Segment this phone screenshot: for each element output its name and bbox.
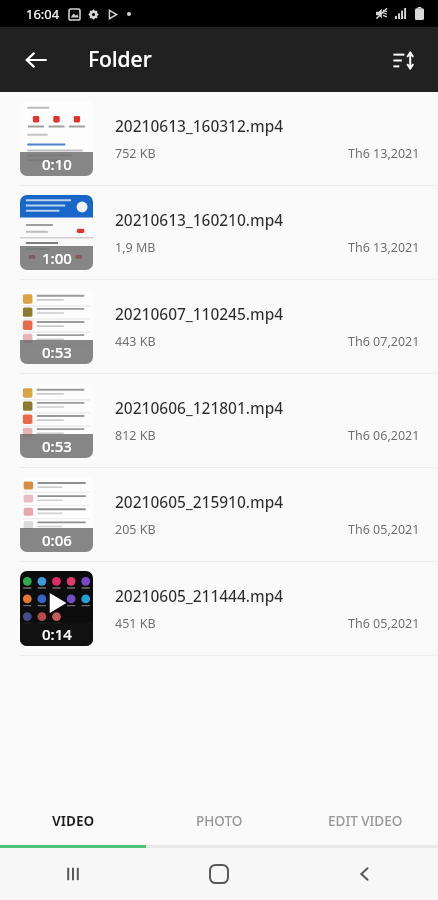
button[interactable]: Recent apps (0, 848, 146, 900)
staticText: 0:06 (42, 530, 72, 550)
staticText: PHOTO (196, 812, 243, 830)
staticText: Th6 06,2021 (348, 427, 420, 444)
staticText: 0:14 (42, 624, 72, 644)
button[interactable]: 0:53 (0, 374, 438, 467)
staticText: 16:04 (26, 5, 60, 23)
staticText: 0:10 (42, 154, 72, 174)
staticText: 1:00 (42, 248, 72, 268)
staticText: 752 KB (115, 145, 156, 162)
staticText: Th6 07,2021 (348, 333, 420, 350)
button[interactable]: Back (292, 848, 438, 900)
staticText: 0:53 (42, 342, 72, 362)
staticText: 1,9 MB (115, 239, 156, 256)
button[interactable]: EDIT VIDEO (292, 797, 438, 845)
staticText: 20210613_160210.mp4 (115, 209, 284, 230)
staticText: EDIT VIDEO (328, 812, 403, 830)
staticText: 20210606_121801.mp4 (115, 397, 284, 418)
button[interactable]: PHOTO (146, 797, 292, 845)
staticText: 443 KB (115, 333, 156, 350)
button[interactable]: 0:06 (0, 468, 438, 561)
staticText: 205 KB (115, 521, 156, 538)
staticText: 20210613_160312.mp4 (115, 115, 284, 136)
button[interactable]: Sort (380, 37, 426, 83)
button[interactable]: VIDEO (0, 797, 146, 845)
button[interactable]: 0:10 (0, 92, 438, 185)
staticText: Th6 13,2021 (348, 145, 420, 162)
staticText: VIDEO (52, 812, 95, 830)
button[interactable]: 0:53 (0, 280, 438, 373)
button[interactable]: Back (14, 38, 58, 82)
staticText: Th6 05,2021 (348, 521, 420, 538)
button[interactable]: Home (146, 848, 292, 900)
staticText: Folder (88, 45, 152, 74)
button[interactable]: 1:00 (0, 186, 438, 279)
button[interactable]: 0:14 (0, 562, 438, 655)
staticText: 812 KB (115, 427, 156, 444)
staticText: 20210605_215910.mp4 (115, 491, 284, 512)
staticText: Th6 13,2021 (348, 239, 420, 256)
staticText: 20210607_110245.mp4 (115, 303, 284, 324)
staticText: 451 KB (115, 615, 156, 632)
staticText: 0:53 (42, 436, 72, 456)
staticText: Th6 05,2021 (348, 615, 420, 632)
staticText: 20210605_211444.mp4 (115, 585, 284, 606)
